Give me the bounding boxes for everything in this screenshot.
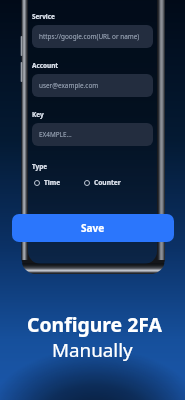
- staticText: Type: [32, 162, 48, 171]
- staticText: Service: [32, 12, 55, 21]
- staticText: Time: [44, 178, 61, 187]
- button[interactable]: Time: [34, 178, 61, 187]
- staticText: Configure 2FA: [27, 311, 162, 337]
- staticText: Counter: [94, 178, 121, 187]
- staticText: Key: [32, 110, 44, 119]
- button[interactable]: EX4MPLE...: [32, 123, 153, 146]
- button[interactable]: https://google.com(URL or name): [32, 25, 153, 48]
- button[interactable]: Save: [12, 214, 174, 242]
- button[interactable]: Counter: [84, 178, 121, 187]
- staticText: Save: [81, 221, 105, 235]
- staticText: https://google.com(URL or name): [39, 32, 140, 41]
- staticText: EX4MPLE...: [39, 130, 72, 139]
- staticText: Account: [32, 61, 59, 70]
- button[interactable]: user@example.com: [32, 74, 153, 97]
- staticText: Manually: [52, 337, 133, 363]
- staticText: user@example.com: [39, 81, 99, 90]
